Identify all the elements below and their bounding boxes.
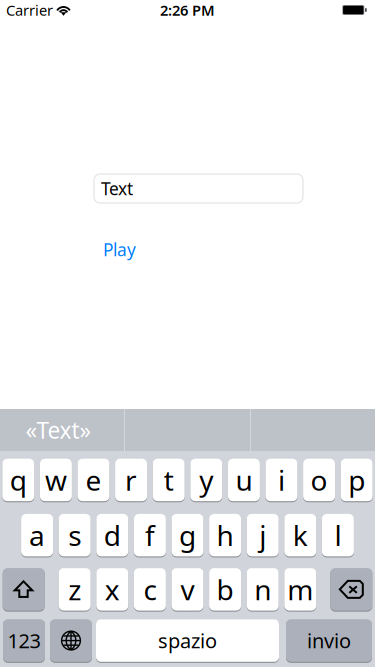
button[interactable]: e bbox=[77, 458, 109, 502]
staticText: i bbox=[278, 461, 285, 499]
staticText: x bbox=[105, 571, 120, 608]
button[interactable]: d bbox=[96, 513, 128, 557]
staticText: Text bbox=[101, 177, 133, 200]
button[interactable]: j bbox=[247, 513, 279, 557]
staticText: h bbox=[217, 517, 234, 554]
button[interactable]: Play bbox=[103, 238, 136, 261]
button[interactable]: s bbox=[59, 513, 91, 557]
staticText: k bbox=[293, 517, 308, 554]
button[interactable]: Shift bbox=[3, 567, 45, 611]
staticText: e bbox=[85, 461, 101, 499]
button[interactable]: b bbox=[209, 567, 241, 611]
staticText: invio bbox=[307, 627, 351, 654]
staticText: spazio bbox=[158, 627, 217, 654]
staticText: r bbox=[125, 461, 137, 499]
staticText: d bbox=[104, 517, 121, 554]
button[interactable]: g bbox=[171, 513, 203, 557]
staticText: g bbox=[179, 517, 196, 554]
staticText: m bbox=[287, 571, 313, 608]
staticText: q bbox=[10, 461, 27, 499]
button[interactable]: n bbox=[247, 567, 279, 611]
staticText: p bbox=[348, 461, 365, 499]
staticText: Play bbox=[103, 238, 136, 261]
button[interactable]: u bbox=[228, 458, 260, 502]
staticText: t bbox=[164, 461, 174, 499]
button[interactable]: m bbox=[284, 567, 316, 611]
staticText: a bbox=[29, 517, 45, 554]
staticText: Carrier bbox=[6, 0, 53, 20]
staticText: w bbox=[45, 461, 67, 499]
button[interactable]: f bbox=[134, 513, 166, 557]
staticText: 123 bbox=[7, 627, 40, 654]
button[interactable]: invio bbox=[286, 619, 372, 662]
button[interactable]: x bbox=[96, 567, 128, 611]
button[interactable]: i bbox=[265, 458, 297, 502]
staticText: v bbox=[180, 571, 194, 608]
staticText: c bbox=[143, 571, 156, 608]
staticText: n bbox=[254, 571, 271, 608]
button[interactable]: v bbox=[171, 567, 203, 611]
button[interactable]: l bbox=[322, 513, 354, 557]
button[interactable]: a bbox=[21, 513, 53, 557]
staticText: z bbox=[68, 571, 81, 608]
staticText: j bbox=[259, 517, 266, 554]
staticText: u bbox=[235, 461, 252, 499]
button[interactable]: spazio bbox=[96, 619, 279, 662]
staticText: s bbox=[68, 517, 81, 554]
button[interactable]: Delete bbox=[330, 567, 372, 611]
button[interactable]: «Text» bbox=[0, 409, 120, 451]
staticText: f bbox=[145, 517, 155, 554]
button[interactable]: t bbox=[153, 458, 185, 502]
button[interactable]: z bbox=[59, 567, 91, 611]
button[interactable]: Text bbox=[94, 174, 303, 203]
button[interactable]: 123 bbox=[3, 619, 45, 662]
button[interactable]: y bbox=[190, 458, 222, 502]
staticText: b bbox=[217, 571, 234, 608]
button[interactable]: r bbox=[115, 458, 147, 502]
button[interactable]: h bbox=[209, 513, 241, 557]
button[interactable]: Next keyboard bbox=[50, 619, 92, 662]
button[interactable]: k bbox=[284, 513, 316, 557]
staticText: l bbox=[334, 517, 341, 554]
button[interactable]: q bbox=[2, 458, 34, 502]
staticText: y bbox=[199, 461, 213, 499]
button[interactable]: o bbox=[303, 458, 335, 502]
button[interactable]: p bbox=[341, 458, 373, 502]
button[interactable]: w bbox=[40, 458, 72, 502]
staticText: 2:26 PM bbox=[160, 0, 215, 20]
button[interactable]: c bbox=[134, 567, 166, 611]
staticText: «Text» bbox=[25, 415, 91, 445]
staticText: o bbox=[311, 461, 328, 499]
